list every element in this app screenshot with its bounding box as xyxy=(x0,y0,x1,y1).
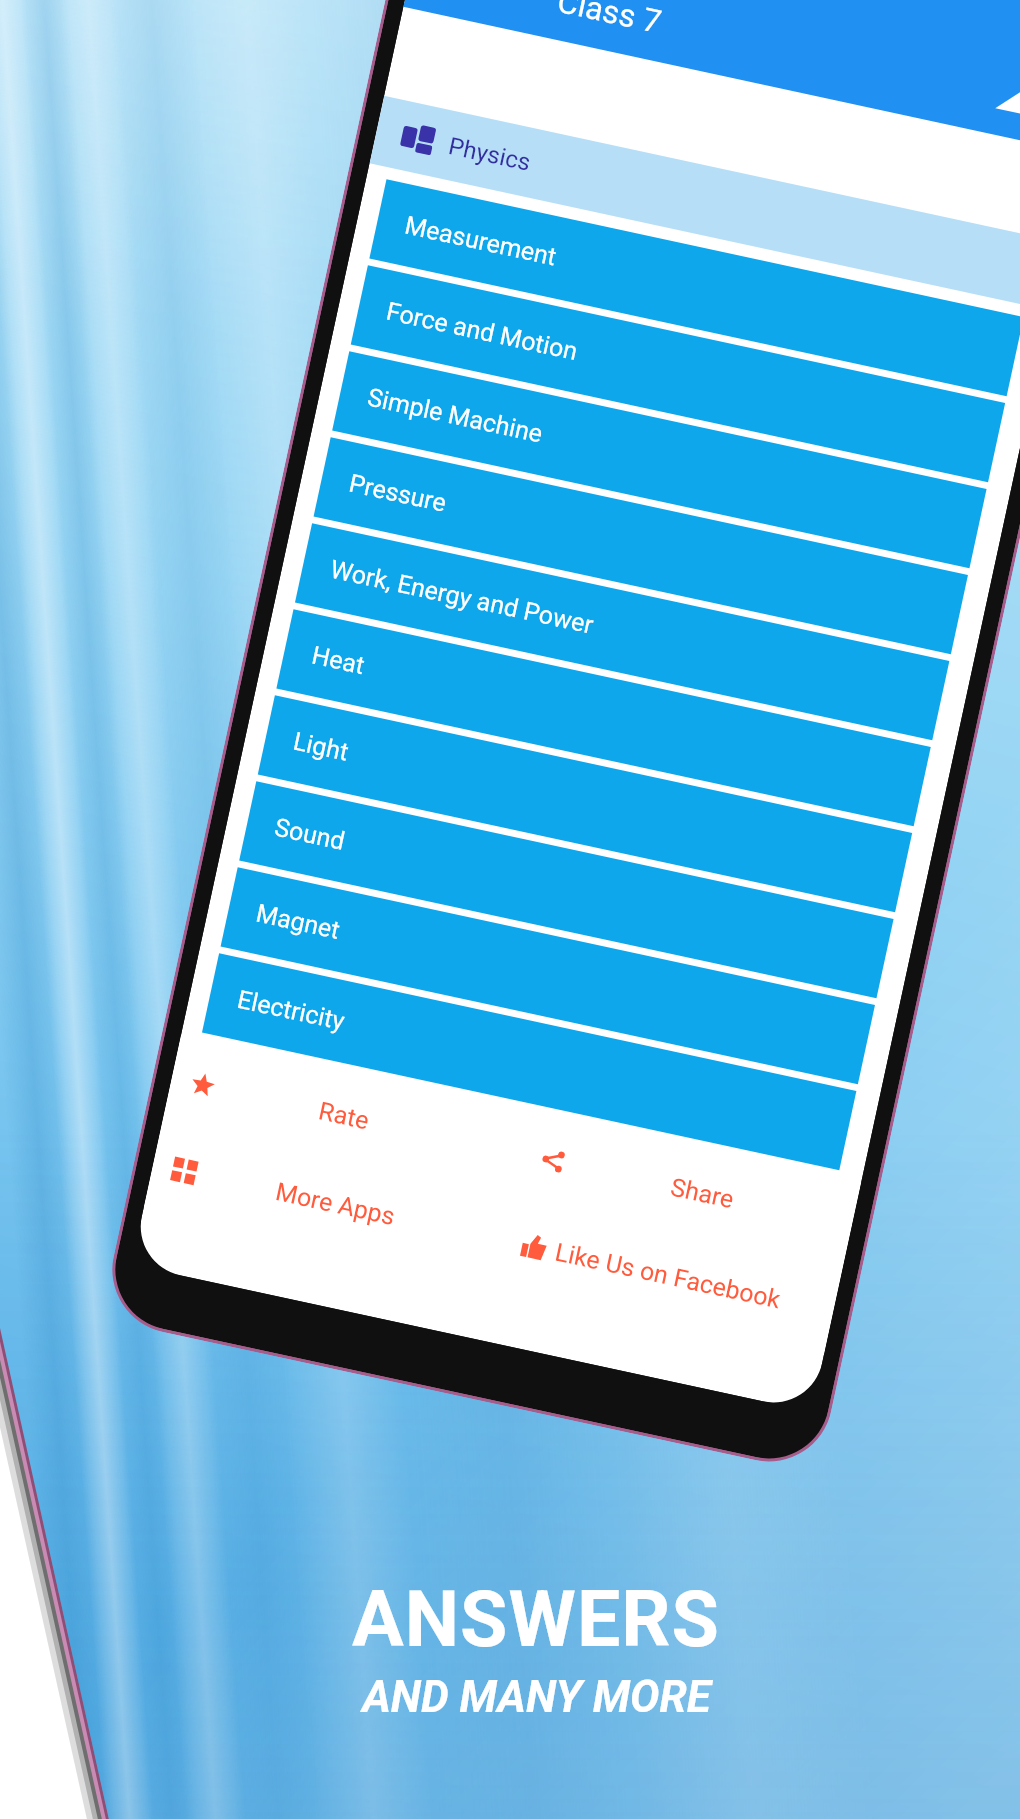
staticText: Magnet xyxy=(253,899,343,945)
button[interactable]: Light xyxy=(258,695,912,912)
staticText: Share xyxy=(668,1172,737,1214)
button[interactable]: Heat xyxy=(276,609,931,826)
staticText: Like Us on Facebook xyxy=(553,1237,783,1314)
staticText: Heat xyxy=(309,641,367,680)
button[interactable]: Magnet xyxy=(221,867,875,1084)
button[interactable]: Electricity xyxy=(202,953,856,1170)
staticText: Measurement xyxy=(402,210,560,272)
staticText: Pressure xyxy=(346,469,449,518)
button[interactable]: Measurement xyxy=(369,179,1020,396)
button[interactable]: Like Us on Facebook xyxy=(496,1197,843,1354)
staticText: More Apps xyxy=(273,1177,398,1231)
button[interactable]: Share xyxy=(514,1111,861,1268)
staticText: Simple Machine xyxy=(365,383,545,449)
button[interactable]: Simple Machine xyxy=(332,351,987,568)
button[interactable]: Force and Motion xyxy=(351,265,1005,482)
staticText: Electricity xyxy=(235,985,348,1036)
staticText: ANSWERS xyxy=(352,1575,720,1665)
staticText: Sound xyxy=(272,813,347,856)
staticText: Class 7 xyxy=(554,0,665,41)
staticText: Light xyxy=(291,727,351,767)
staticText: Work, Energy and Power xyxy=(328,555,596,640)
button[interactable]: Rate xyxy=(162,1035,533,1197)
button[interactable]: Work, Energy and Power xyxy=(295,523,949,740)
button[interactable]: Pressure xyxy=(314,437,968,654)
button[interactable]: Sound xyxy=(239,781,894,998)
staticText: Force and Motion xyxy=(384,296,580,366)
staticText: AND MANY MORE xyxy=(362,1671,711,1723)
staticText: Rate xyxy=(316,1096,372,1135)
staticText: Physics xyxy=(446,132,533,177)
button[interactable]: More Apps xyxy=(144,1121,514,1283)
